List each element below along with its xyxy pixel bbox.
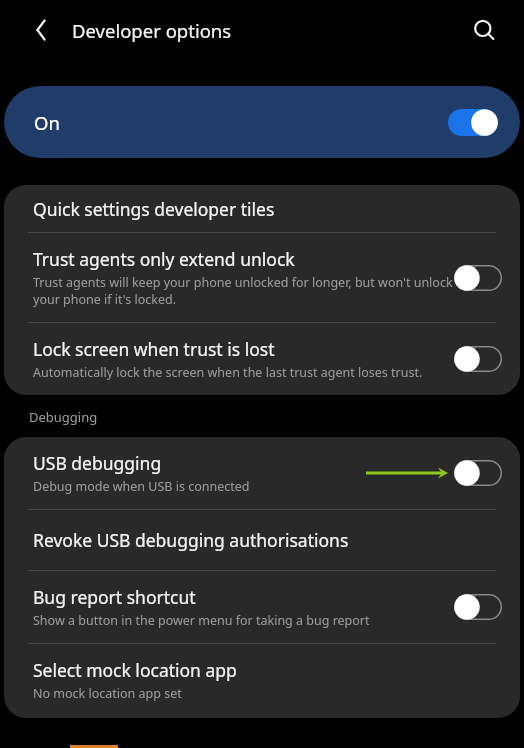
- staticText: No mock location app set: [33, 685, 182, 702]
- button[interactable]: Trust agents only extend unlock: [4, 233, 520, 322]
- staticText: Bug report shortcut: [33, 585, 196, 609]
- button[interactable]: Trust agents only extend unlock: [454, 265, 502, 291]
- button[interactable]: On: [4, 86, 520, 158]
- button[interactable]: USB debugging: [454, 460, 502, 486]
- button[interactable]: USB debugging: [4, 437, 520, 509]
- button[interactable]: Bug report shortcut: [454, 594, 502, 620]
- staticText: Select mock location app: [33, 658, 237, 682]
- staticText: Developer options: [72, 18, 232, 43]
- staticText: Quick settings developer tiles: [33, 197, 275, 221]
- button[interactable]: Back: [20, 9, 62, 51]
- button[interactable]: Lock screen when trust is lost: [454, 346, 502, 372]
- staticText: Lock screen when trust is lost: [33, 337, 275, 361]
- button[interactable]: Developer options on: [448, 109, 498, 136]
- staticText: Debugging: [29, 408, 98, 426]
- button[interactable]: Bug report shortcut: [4, 571, 520, 643]
- button[interactable]: Select mock location app: [4, 644, 520, 718]
- button[interactable]: Lock screen when trust is lost: [4, 323, 520, 395]
- staticText: Debug mode when USB is connected: [33, 478, 250, 495]
- staticText: On: [34, 110, 60, 135]
- staticText: Automatically lock the screen when the l…: [33, 364, 423, 381]
- staticText: Revoke USB debugging authorisations: [33, 528, 349, 552]
- button[interactable]: Quick settings developer tiles: [4, 185, 520, 232]
- staticText: Trust agents only extend unlock: [33, 247, 295, 271]
- button[interactable]: Search: [462, 8, 506, 52]
- button[interactable]: Revoke USB debugging authorisations: [4, 510, 520, 570]
- staticText: Show a button in the power menu for taki…: [33, 612, 370, 629]
- staticText: Trust agents will keep your phone unlock…: [33, 274, 454, 308]
- staticText: USB debugging: [33, 451, 162, 475]
